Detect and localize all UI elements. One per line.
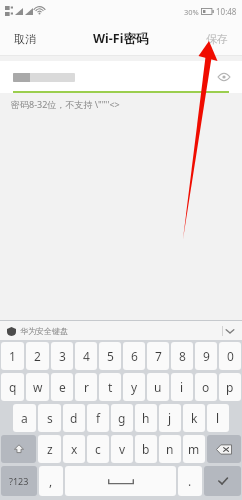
- staticText: t: [108, 379, 113, 395]
- button[interactable]: g: [111, 404, 133, 432]
- button[interactable]: q: [1, 373, 24, 401]
- staticText: q: [9, 379, 17, 395]
- staticText: o: [202, 379, 210, 395]
- button[interactable]: h: [135, 404, 157, 432]
- staticText: r: [84, 379, 89, 395]
- staticText: b: [142, 441, 150, 457]
- button[interactable]: 4: [75, 342, 97, 370]
- staticText: 0: [227, 348, 234, 364]
- staticText: 30%: [184, 7, 199, 17]
- button[interactable]: a: [13, 404, 36, 432]
- button[interactable]: 1: [1, 342, 24, 370]
- button[interactable]: c: [87, 435, 109, 463]
- button[interactable]: l: [207, 404, 229, 432]
- staticText: Wi-Fi密码: [93, 30, 149, 47]
- staticText: 7: [155, 348, 162, 364]
- button[interactable]: 2: [26, 342, 49, 370]
- button[interactable]: p: [219, 373, 241, 401]
- button[interactable]: e: [51, 373, 73, 401]
- button[interactable]: d: [63, 404, 85, 432]
- button[interactable]: 3: [51, 342, 73, 370]
- button[interactable]: y: [123, 373, 145, 401]
- staticText: 华为安全键盘: [20, 326, 68, 336]
- button[interactable]: j: [159, 404, 181, 432]
- staticText: ,: [49, 473, 53, 489]
- staticText: w: [33, 379, 43, 395]
- staticText: 6: [131, 348, 138, 364]
- staticText: p: [226, 379, 234, 395]
- staticText: 4: [83, 348, 90, 364]
- staticText: n: [166, 441, 174, 457]
- button[interactable]: ,: [39, 466, 63, 496]
- staticText: j: [168, 410, 172, 426]
- button[interactable]: o: [195, 373, 217, 401]
- staticText: l: [216, 410, 220, 426]
- staticText: z: [47, 441, 53, 457]
- button[interactable]: x: [63, 435, 85, 463]
- staticText: d: [70, 410, 78, 426]
- staticText: 2: [34, 348, 41, 364]
- staticText: 9: [203, 348, 210, 364]
- staticText: v: [119, 441, 126, 457]
- button[interactable]: f: [87, 404, 109, 432]
- button[interactable]: .: [178, 466, 202, 496]
- button[interactable]: Show password: [214, 67, 234, 87]
- button[interactable]: ?123: [1, 466, 37, 496]
- staticText: g: [118, 410, 126, 426]
- button[interactable]: v: [111, 435, 133, 463]
- button[interactable]: Backspace: [207, 435, 241, 463]
- staticText: u: [154, 379, 162, 395]
- staticText: ?123: [9, 475, 29, 487]
- button[interactable]: 7: [147, 342, 169, 370]
- staticText: 8: [179, 348, 186, 364]
- button[interactable]: 0: [219, 342, 241, 370]
- staticText: e: [59, 379, 66, 395]
- staticText: 保存: [206, 32, 228, 46]
- button[interactable]: Hide keyboard: [222, 323, 238, 339]
- button[interactable]: t: [99, 373, 121, 401]
- button[interactable]: n: [159, 435, 181, 463]
- button[interactable]: 9: [195, 342, 217, 370]
- button[interactable]: z: [38, 435, 61, 463]
- staticText: 密码8-32位，不支持 \""''<>: [11, 98, 120, 110]
- button[interactable]: r: [75, 373, 97, 401]
- button[interactable]: Shift: [1, 435, 36, 463]
- staticText: i: [180, 379, 184, 395]
- staticText: m: [188, 441, 200, 457]
- staticText: f: [96, 410, 101, 426]
- button[interactable]: b: [135, 435, 157, 463]
- button[interactable]: w: [26, 373, 49, 401]
- button[interactable]: Enter: [204, 466, 241, 496]
- button[interactable]: 取消: [0, 23, 50, 55]
- staticText: c: [95, 441, 101, 457]
- staticText: s: [47, 410, 53, 426]
- staticText: .: [188, 473, 192, 489]
- button[interactable]: 8: [171, 342, 193, 370]
- button[interactable]: m: [183, 435, 205, 463]
- staticText: h: [142, 410, 150, 426]
- button[interactable]: u: [147, 373, 169, 401]
- staticText: 3: [59, 348, 66, 364]
- button[interactable]: 保存: [192, 23, 242, 55]
- button[interactable]: 6: [123, 342, 145, 370]
- staticText: a: [21, 410, 28, 426]
- staticText: x: [71, 441, 78, 457]
- button[interactable]: 5: [99, 342, 121, 370]
- staticText: 5: [107, 348, 114, 364]
- staticText: k: [191, 410, 198, 426]
- staticText: 10:48: [216, 6, 237, 17]
- staticText: y: [131, 379, 138, 395]
- button[interactable]: k: [183, 404, 205, 432]
- staticText: 1: [9, 348, 16, 364]
- button[interactable]: Space: [65, 466, 176, 496]
- button[interactable]: s: [38, 404, 61, 432]
- staticText: 取消: [14, 32, 36, 46]
- button[interactable]: i: [171, 373, 193, 401]
